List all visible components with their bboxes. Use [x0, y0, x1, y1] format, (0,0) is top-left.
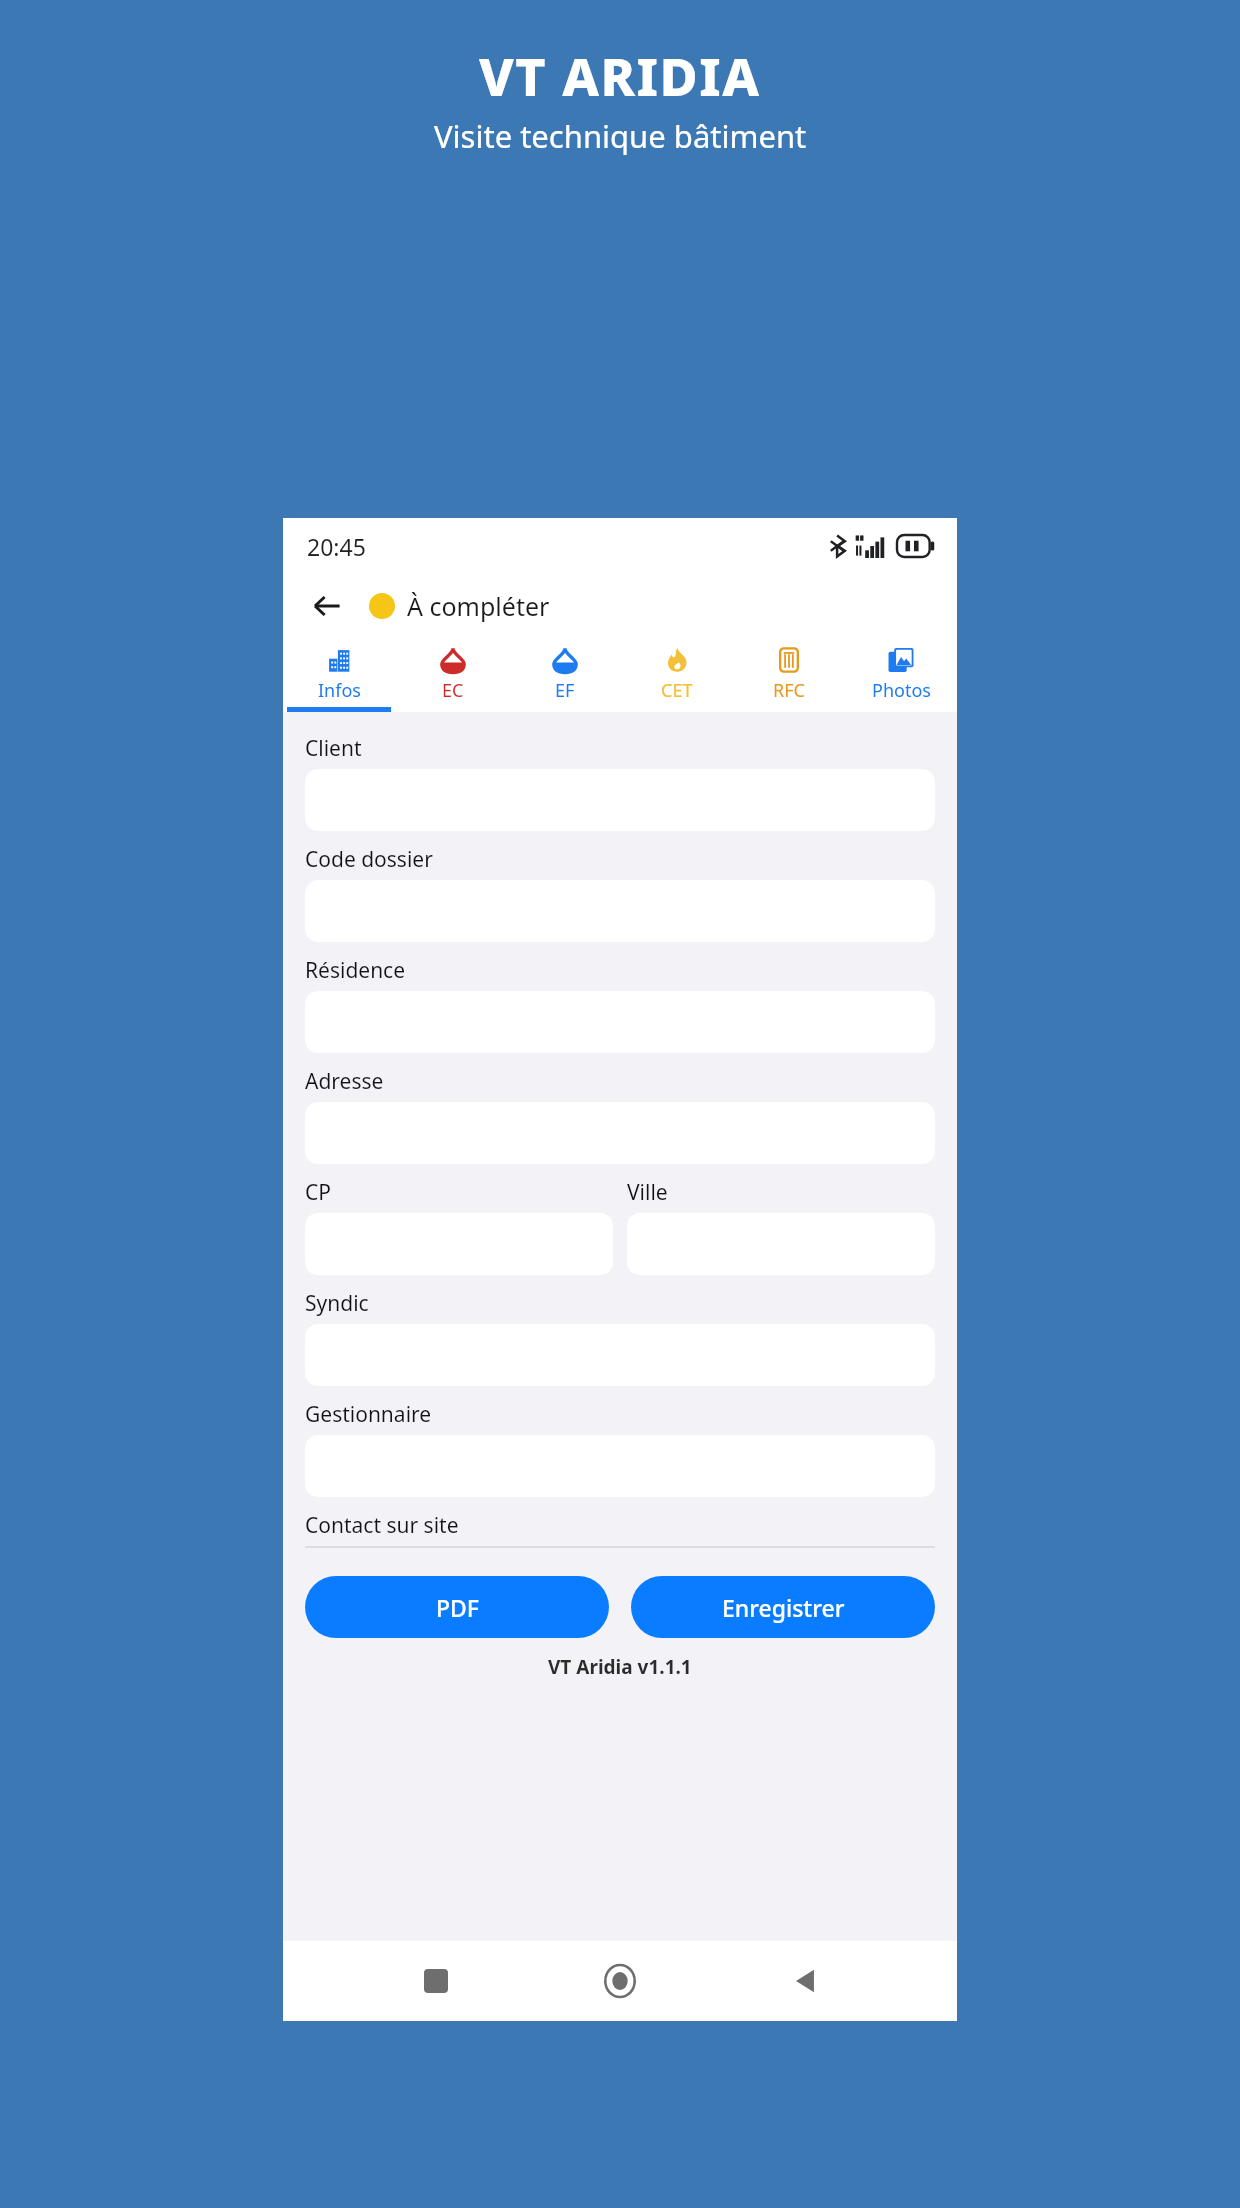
button[interactable]: PDF — [305, 1576, 609, 1638]
staticText: EC — [442, 678, 464, 703]
button[interactable]: Back — [303, 582, 351, 630]
staticText: RFC — [773, 678, 805, 703]
staticText: Résidence — [305, 956, 406, 985]
button[interactable]: Home — [588, 1949, 652, 2013]
button[interactable]: Recent apps — [404, 1949, 468, 2013]
staticText: Visite technique bâtiment — [434, 115, 807, 157]
button[interactable]: CET — [621, 638, 733, 712]
staticText: Ville — [627, 1178, 668, 1207]
button[interactable]: RFC — [733, 638, 845, 712]
button[interactable]: Infos — [283, 638, 396, 712]
staticText: EF — [555, 678, 575, 703]
staticText: VT ARIDIA — [479, 40, 761, 111]
staticText: Photos — [872, 678, 931, 703]
staticText: PDF — [436, 1592, 479, 1623]
staticText: Adresse — [305, 1067, 384, 1096]
staticText: VT Aridia v1.1.1 — [548, 1654, 692, 1680]
staticText: À compléter — [407, 589, 550, 623]
staticText: Contact sur site — [305, 1511, 459, 1540]
staticText: Enregistrer — [722, 1592, 845, 1623]
staticText: CET — [661, 678, 693, 703]
staticText: Gestionnaire — [305, 1400, 432, 1429]
button[interactable]: EF — [509, 638, 621, 712]
button[interactable]: Back — [773, 1949, 837, 2013]
staticText: Infos — [318, 678, 361, 703]
staticText: Client — [305, 734, 362, 763]
staticText: CP — [305, 1178, 331, 1207]
staticText: Syndic — [305, 1289, 369, 1318]
button[interactable]: EC — [396, 638, 509, 712]
button[interactable]: Enregistrer — [631, 1576, 935, 1638]
button[interactable]: Photos — [845, 638, 957, 712]
staticText: 20:45 — [307, 531, 366, 562]
staticText: Code dossier — [305, 845, 433, 874]
